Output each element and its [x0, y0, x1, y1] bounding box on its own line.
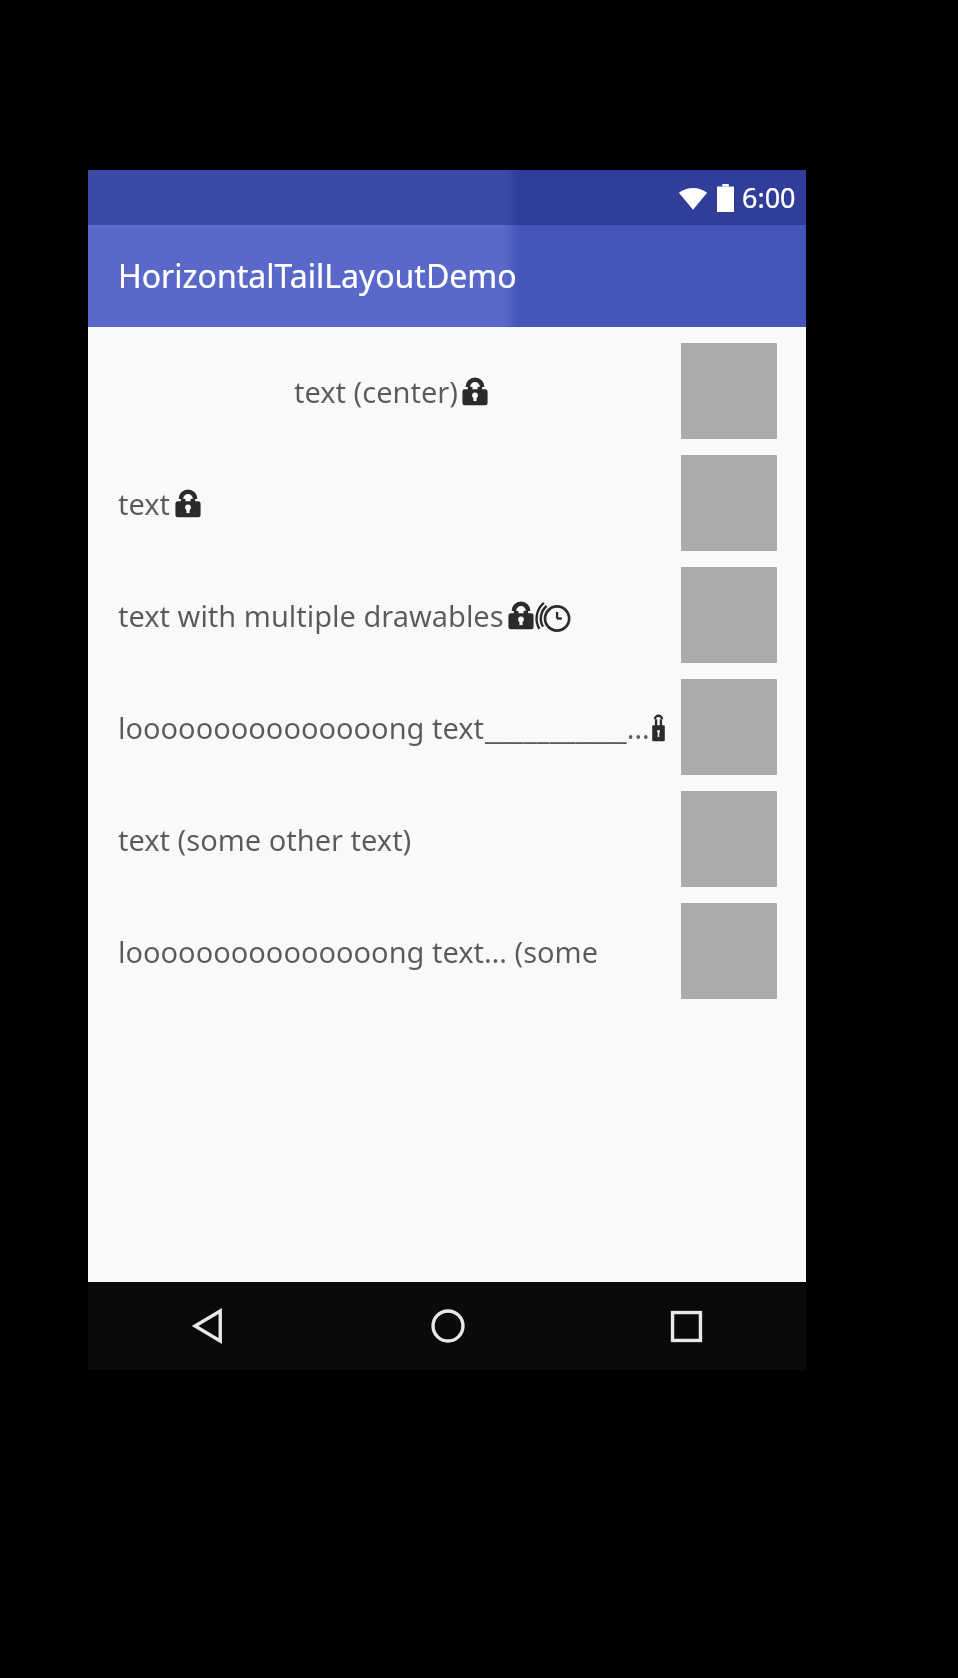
button[interactable]: Back: [88, 1282, 328, 1370]
button[interactable]: text (center): [88, 335, 806, 447]
staticText: ___________…: [485, 708, 650, 747]
other: Alarm: [538, 598, 574, 634]
staticText: text with multiple drawables: [118, 596, 504, 635]
staticText: looooooooooooooong text… (some other tex…: [118, 932, 667, 971]
other: Locked: [650, 711, 667, 745]
button[interactable]: text (some other text): [88, 783, 806, 895]
button[interactable]: looooooooooooooong text: [88, 671, 806, 783]
other: Locked: [458, 375, 492, 409]
staticText: HorizontalTailLayoutDemo: [118, 254, 517, 298]
staticText: text (some other text): [118, 820, 412, 859]
button[interactable]: text with multiple drawables: [88, 559, 806, 671]
staticText: looooooooooooooong text: [118, 708, 485, 747]
staticText: text (center): [294, 372, 458, 411]
button[interactable]: Recent apps: [567, 1282, 806, 1370]
button[interactable]: looooooooooooooong text… (some other tex…: [88, 895, 806, 1007]
button[interactable]: text: [88, 447, 806, 559]
staticText: text: [118, 484, 171, 523]
other: Locked: [504, 599, 538, 633]
other: Locked: [171, 487, 205, 521]
staticText: 6:00: [742, 179, 796, 216]
button[interactable]: Home: [328, 1282, 567, 1370]
